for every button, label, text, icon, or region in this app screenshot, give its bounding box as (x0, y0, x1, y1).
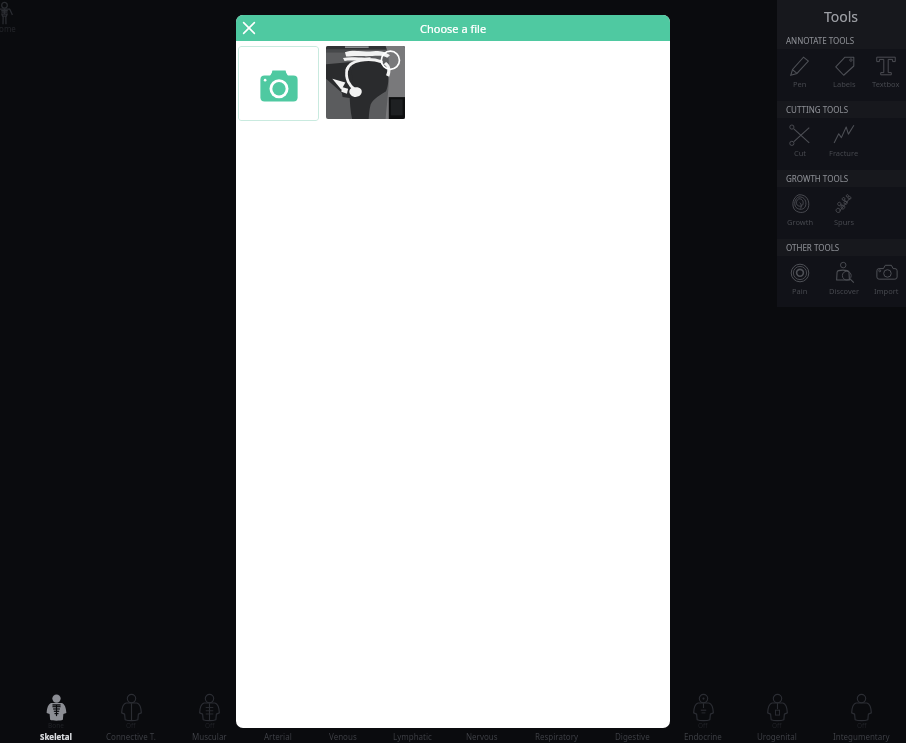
button[interactable]: MRI scan thumbnail (326, 46, 405, 119)
button[interactable]: Spurs (822, 187, 866, 239)
staticText: ANNOTATE TOOLS (786, 35, 855, 46)
staticText: Lymphatic (393, 731, 432, 742)
staticText: Digestive (615, 731, 650, 742)
button[interactable]: Off (821, 694, 901, 743)
staticText: Integumentary (833, 731, 890, 742)
staticText: Spurs (834, 217, 855, 227)
staticText: GROWTH TOOLS (786, 173, 849, 184)
staticText: CUTTING TOOLS (786, 104, 849, 115)
button[interactable]: Bone (16, 694, 96, 743)
staticText: Off (338, 721, 348, 730)
staticText: Urogenital (757, 731, 797, 742)
button[interactable]: Take a photo (238, 46, 319, 121)
staticText: Off (126, 721, 136, 730)
staticText: Discover (829, 286, 860, 296)
button[interactable]: Off (91, 694, 171, 743)
staticText: Off (628, 721, 638, 730)
staticText: Off (552, 721, 562, 730)
button[interactable]: Off (592, 694, 672, 743)
staticText: Pen (793, 79, 807, 89)
staticText: Pain (792, 286, 808, 296)
staticText: Labels (833, 79, 856, 89)
button[interactable]: Off (303, 694, 383, 743)
button[interactable]: Off (663, 694, 743, 743)
button[interactable]: Home (0, 1, 21, 26)
staticText: Fracture (829, 148, 859, 158)
staticText: Home (0, 23, 21, 34)
button[interactable]: Off (737, 694, 817, 743)
staticText: Cut (794, 148, 807, 158)
staticText: Growth (787, 217, 814, 227)
staticText: Connective T. (106, 731, 156, 742)
staticText: Skeletal (40, 731, 72, 742)
button[interactable]: Off (169, 694, 249, 743)
staticText: Off (408, 721, 418, 730)
staticText: Choose a file (420, 21, 487, 36)
staticText: Off (205, 721, 215, 730)
button[interactable]: Off (372, 694, 452, 743)
staticText: Off (477, 721, 487, 730)
button[interactable]: Growth (778, 187, 822, 239)
staticText: Endocrine (684, 731, 722, 742)
staticText: Textbox (872, 79, 900, 89)
button[interactable]: Discover (822, 256, 866, 307)
button[interactable]: Pain (778, 256, 822, 307)
staticText: Arterial (264, 731, 292, 742)
staticText: OTHER TOOLS (786, 242, 840, 253)
staticText: Off (273, 721, 283, 730)
staticText: Bone (48, 721, 64, 730)
button[interactable]: Fracture (822, 118, 866, 170)
staticText: Venous (329, 731, 357, 742)
staticText: Respiratory (535, 731, 579, 742)
button[interactable]: Close (236, 15, 262, 41)
button[interactable]: Import (866, 256, 906, 307)
button[interactable]: Off (442, 694, 522, 743)
staticText: Off (857, 721, 867, 730)
button[interactable]: Labels (822, 49, 866, 101)
staticText: Off (698, 721, 708, 730)
button[interactable]: Cut (778, 118, 822, 170)
staticText: Tools (824, 7, 859, 26)
staticText: Nervous (466, 731, 498, 742)
button[interactable]: Off (517, 694, 597, 743)
button[interactable]: Pen (778, 49, 822, 101)
button[interactable]: Off (238, 694, 318, 743)
staticText: Muscular (192, 731, 227, 742)
button[interactable]: Textbox (866, 49, 906, 101)
staticText: Off (772, 721, 782, 730)
staticText: Import (874, 286, 899, 296)
